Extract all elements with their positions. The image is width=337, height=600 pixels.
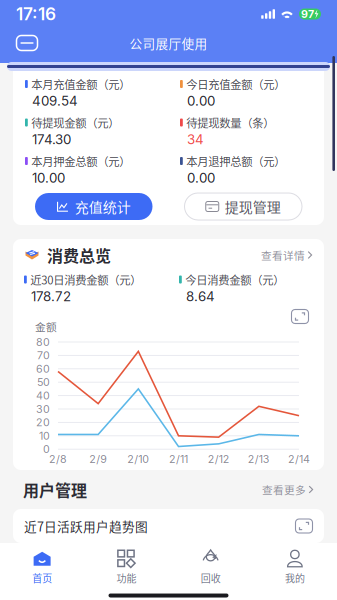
staticText: 0.00 [187,93,215,109]
staticText: 我的 [285,571,305,585]
staticText: 2/12 [208,452,230,465]
staticText: 70 [37,349,50,362]
staticText: 今日消费金额（元） [185,271,284,288]
staticText: 60 [36,362,50,375]
staticText: 用户管理 [23,478,87,501]
staticText: 97 [301,7,314,20]
button[interactable]: 提现管理 [184,193,302,220]
staticText: 50 [37,376,50,389]
staticText: 本月退押总额（元） [186,153,285,169]
staticText: 查看详情 [261,247,305,263]
staticText: 2/13 [248,452,270,465]
staticText: 金额 [35,319,57,334]
staticText: 178.72 [31,288,71,304]
staticText: 本月充值金额（元） [31,76,130,92]
button[interactable]: Expand consumption chart [291,308,309,324]
staticText: 0.00 [187,170,215,186]
staticText: 功能 [116,571,136,585]
button[interactable]: 首页 [0,543,84,591]
staticText: 2/9 [89,452,107,465]
staticText: 回收 [201,571,221,585]
button[interactable]: 查看更多 [262,478,314,501]
staticText: 2/14 [288,452,310,465]
staticText: 20 [36,416,50,429]
staticText: 80 [36,335,50,348]
staticText: 待提现数量（条） [186,114,274,131]
staticText: 2/11 [169,452,188,465]
staticText: 提现管理 [225,196,281,217]
button[interactable]: Expand user chart [295,518,313,534]
staticText: 近30日消费金额（元） [30,271,141,288]
staticText: 今日充值金额（元） [186,76,285,92]
staticText: 待提现金额（元） [31,114,119,131]
staticText: 查看更多 [262,482,306,497]
staticText: 本月押金总额（元） [31,153,130,169]
staticText: 34 [187,131,204,147]
staticText: 17:16 [16,3,56,24]
button[interactable]: 回收 [168,543,253,591]
staticText: 10.00 [32,170,65,186]
staticText: 2/8 [49,452,67,465]
staticText: 消费总览 [47,243,111,267]
button[interactable]: Menu [12,30,42,56]
staticText: 首页 [32,571,52,585]
staticText: 0 [43,443,50,456]
staticText: 公司展厅使用 [129,34,207,52]
staticText: 409.54 [32,93,78,109]
button[interactable]: 查看详情 [253,243,313,267]
staticText: 174.30 [32,131,71,147]
staticText: 30 [36,402,50,415]
staticText: 40 [36,389,50,402]
button[interactable]: 功能 [84,543,168,591]
staticText: 充值统计 [75,196,131,217]
staticText: 2/10 [127,452,149,465]
button[interactable]: 我的 [253,543,337,591]
staticText: 10 [39,429,50,442]
staticText: 近7日活跃用户趋势图 [24,517,148,535]
button[interactable]: 充值统计 [35,193,152,220]
staticText: 8.64 [186,288,215,304]
